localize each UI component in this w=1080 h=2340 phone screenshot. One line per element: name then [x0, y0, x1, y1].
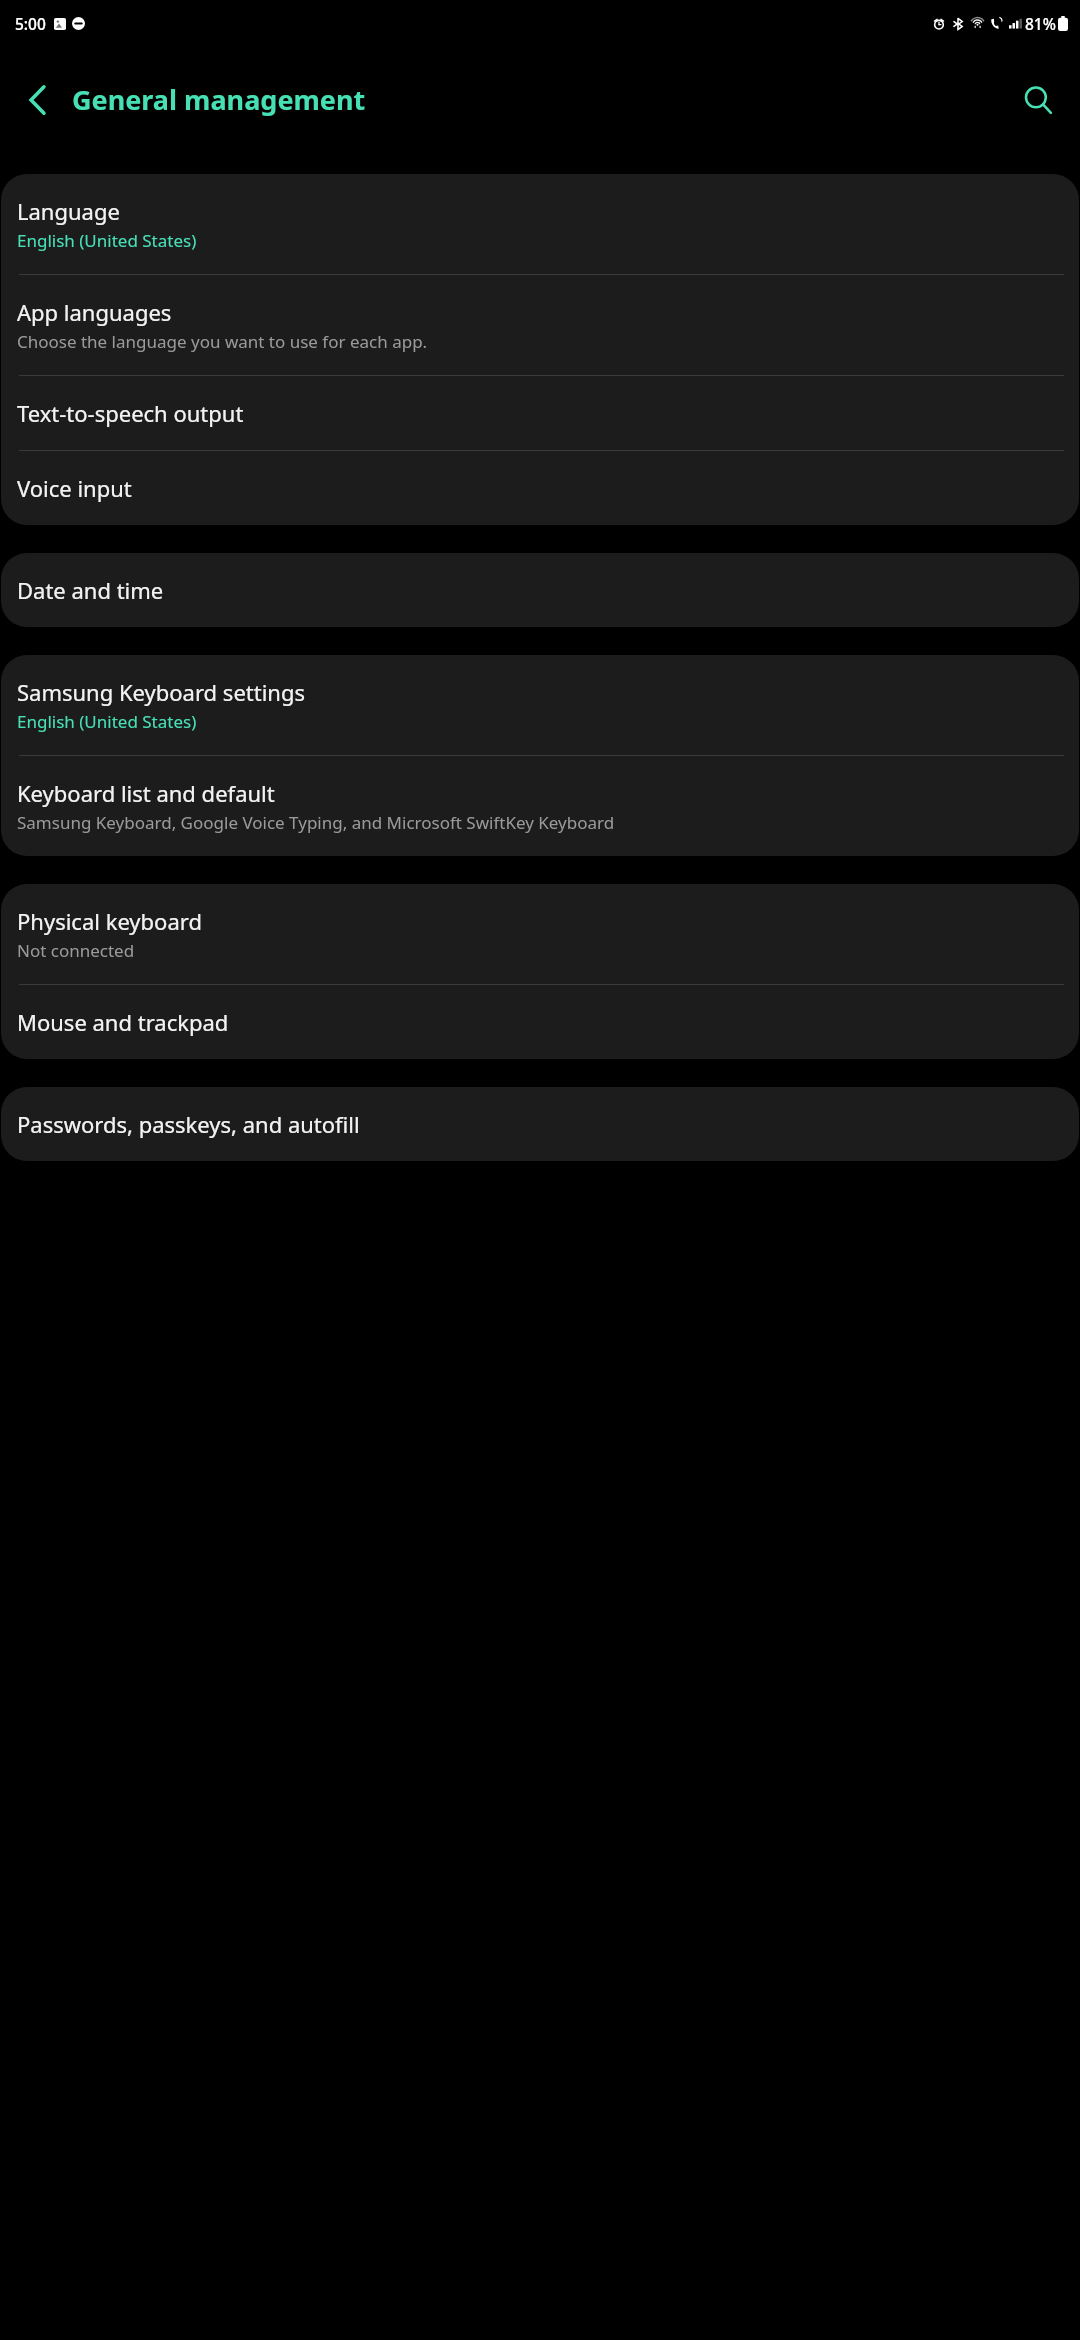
button[interactable]: Voice input	[1, 451, 1079, 525]
staticText: Text-to-speech output	[17, 398, 244, 428]
staticText: Language	[17, 196, 120, 226]
staticText: App languages	[17, 297, 172, 327]
staticText: Samsung Keyboard settings	[17, 677, 306, 707]
staticText: 81%	[1025, 13, 1056, 34]
button[interactable]: Search	[1009, 71, 1067, 129]
staticText: Voice input	[17, 473, 132, 503]
staticText: Physical keyboard	[17, 906, 202, 936]
staticText: Not connected	[17, 939, 135, 962]
button[interactable]: Language	[1, 174, 1079, 274]
button[interactable]: Physical keyboard	[1, 884, 1079, 984]
staticText: English (United States)	[17, 229, 197, 252]
button[interactable]: Keyboard list and default	[1, 756, 1079, 856]
button[interactable]: Text-to-speech output	[1, 376, 1079, 450]
button[interactable]: Date and time	[1, 553, 1079, 627]
button[interactable]: Passwords, passkeys, and autofill	[1, 1087, 1079, 1161]
staticText: Mouse and trackpad	[17, 1007, 229, 1037]
button[interactable]: Mouse and trackpad	[1, 985, 1079, 1059]
staticText: Choose the language you want to use for …	[17, 330, 428, 353]
button[interactable]: Back	[8, 71, 66, 129]
staticText: General management	[72, 81, 366, 118]
staticText: Date and time	[17, 575, 164, 605]
staticText: 5:00	[15, 13, 46, 34]
button[interactable]: Samsung Keyboard settings	[1, 655, 1079, 755]
staticText: Samsung Keyboard, Google Voice Typing, a…	[17, 811, 615, 834]
button[interactable]: App languages	[1, 275, 1079, 375]
staticText: Passwords, passkeys, and autofill	[17, 1109, 360, 1139]
staticText: Keyboard list and default	[17, 778, 275, 808]
staticText: English (United States)	[17, 710, 197, 733]
